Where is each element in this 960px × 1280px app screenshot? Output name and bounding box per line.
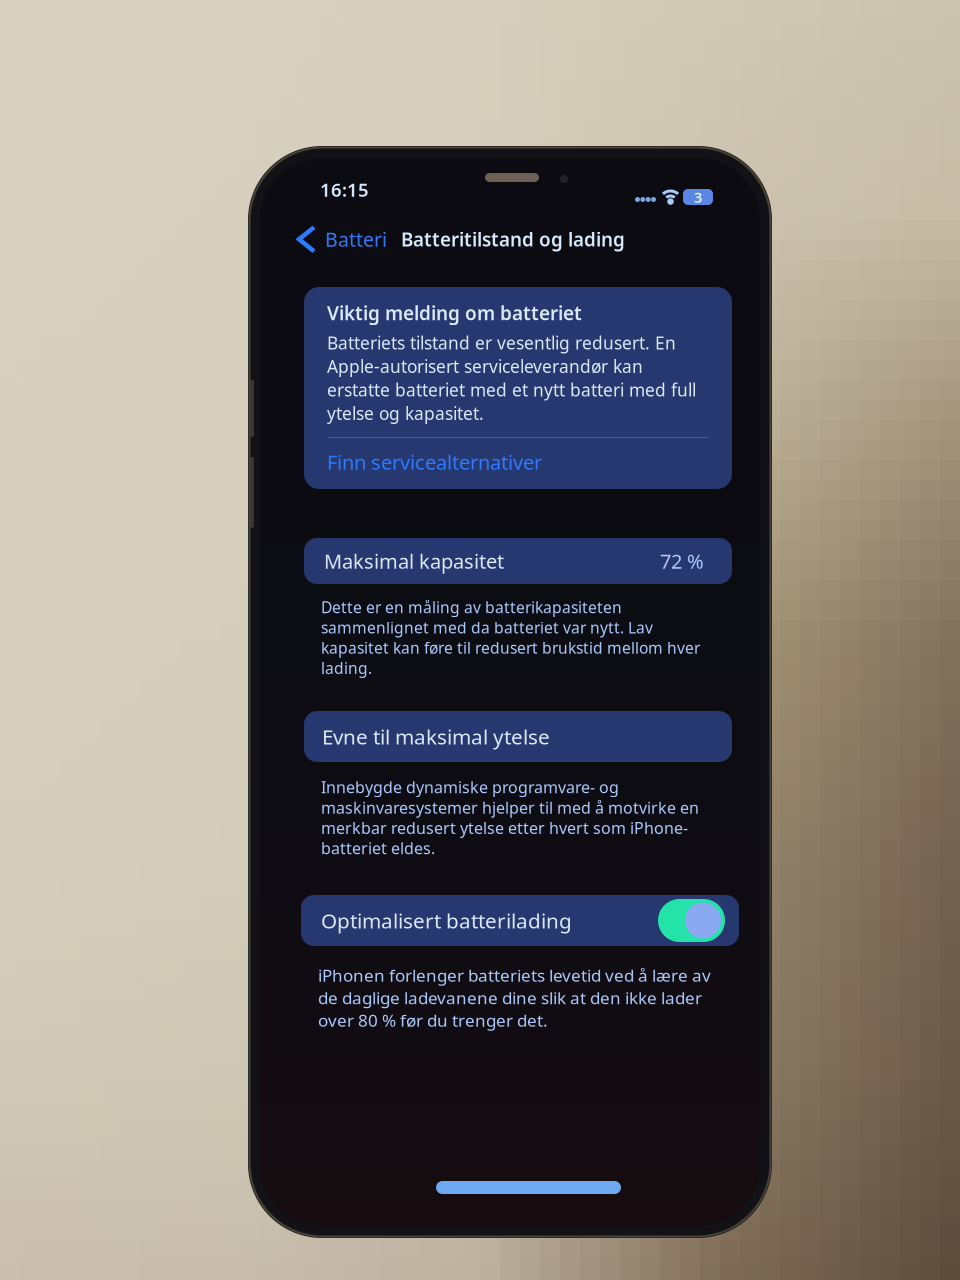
staticText: Finn servicealternativer (327, 448, 542, 476)
staticText: merkbar redusert ytelse etter hvert som … (321, 817, 688, 839)
button[interactable]: Evne til maksimal ytelse (304, 711, 732, 762)
staticText: erstatte batteriet med et nytt batteri m… (327, 378, 696, 401)
staticText: Apple-autorisert serviceleverandør kan (327, 354, 643, 378)
staticText: maskinvaresystemer hjelper til med å mot… (321, 797, 699, 818)
staticText: ytelse og kapasitet. (327, 401, 484, 425)
staticText: Batteritilstand og lading (401, 226, 625, 252)
staticText: kapasitet kan føre til redusert brukstid… (321, 637, 700, 658)
staticText: 16:15 (320, 177, 369, 202)
staticText: 3 (694, 187, 702, 207)
staticText: Batteri (325, 226, 387, 252)
button[interactable]: Optimalisert batterilading (301, 895, 739, 946)
staticText: Innebygde dynamiske programvare- og (321, 776, 619, 798)
staticText: Maksimal kapasitet (324, 547, 504, 575)
staticText: Batteriets tilstand er vesentlig reduser… (327, 331, 676, 354)
staticText: batteriet eldes. (321, 837, 435, 859)
staticText: Viktig melding om batteriet (327, 300, 582, 326)
staticText: 72 % (660, 547, 704, 575)
staticText: sammenlignet med da batteriet var nytt. … (321, 617, 653, 638)
staticText: Optimalisert batterilading (321, 906, 572, 934)
staticText: de daglige ladevanene dine slik at den i… (318, 986, 702, 1009)
button[interactable]: Batteri (299, 222, 387, 256)
staticText: iPhonen forlenger batteriets levetid ved… (318, 964, 711, 987)
staticText: lading. (321, 657, 372, 679)
staticText: Evne til maksimal ytelse (322, 722, 550, 750)
staticText: Dette er en måling av batterikapasiteten (321, 596, 622, 618)
button[interactable]: Finn servicealternativer (327, 438, 542, 475)
staticText: over 80 % før du trenger det. (318, 1009, 548, 1032)
button[interactable]: Maksimal kapasitet (304, 538, 732, 584)
